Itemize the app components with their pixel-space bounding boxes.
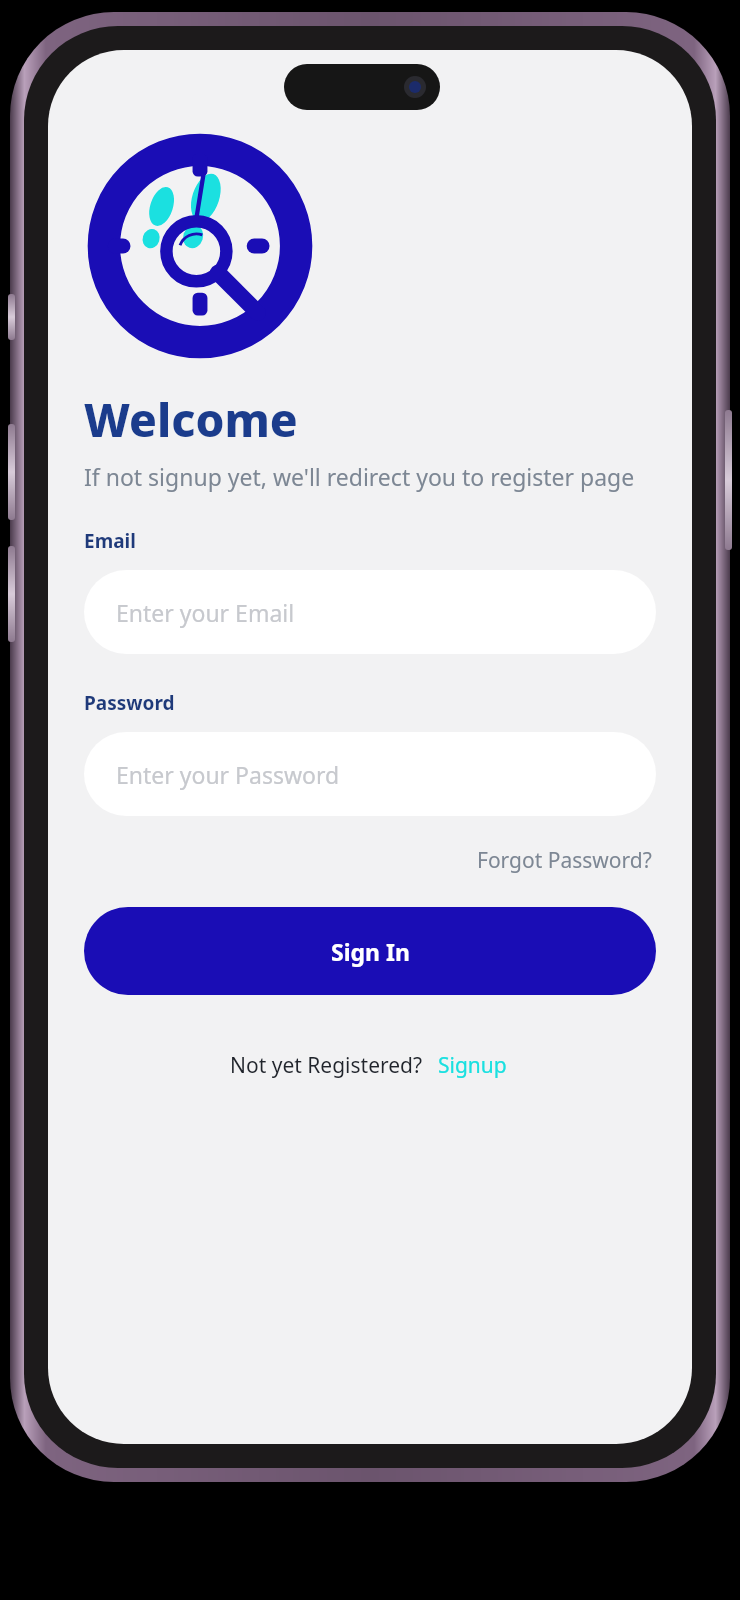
staticText: Sign In [331,936,410,967]
staticText: Password [84,690,175,716]
staticText: Forgot Password? [477,846,652,875]
staticText: Email [84,528,136,554]
button[interactable]: Enter your Email [84,570,656,654]
staticText: Welcome [84,388,298,451]
button[interactable]: Forgot Password? [473,840,656,881]
button[interactable]: Sign In [84,907,656,995]
button[interactable]: Enter your Password [84,732,656,816]
staticText: If not signup yet, we'll redirect you to… [84,461,635,492]
staticText: Signup [438,1051,507,1080]
button[interactable]: Signup [435,1047,510,1084]
staticText: Enter your Email [116,597,295,628]
staticText: Enter your Password [116,759,340,790]
staticText: Not yet Registered? [230,1051,423,1080]
